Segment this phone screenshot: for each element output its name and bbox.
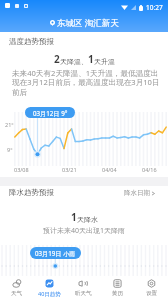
staticText: 03月12日 9° [33, 109, 68, 117]
staticText: 天气 [11, 290, 22, 297]
staticText: 天降温、 [60, 57, 88, 66]
other: 40日趋势 [45, 279, 54, 288]
button[interactable]: 东城区 淘汇新天 [0, 17, 168, 29]
staticText: 10:27 [146, 3, 163, 12]
other: 黄历 [113, 279, 122, 288]
button[interactable]: 听天气 [66, 276, 100, 300]
other: 设置 [147, 279, 156, 288]
staticText: 降水日期 [124, 189, 150, 197]
staticText: 东城区 淘汇新天 [57, 17, 119, 29]
staticText: 2 [54, 52, 60, 66]
staticText: 预计未来40天出现1天降雨 [0, 226, 168, 236]
button[interactable]: 温度趋势预报 [9, 37, 54, 46]
staticText: 04/04 [102, 166, 117, 173]
staticText: 9° [7, 146, 13, 153]
button[interactable]: 03月12日 9° [25, 107, 75, 118]
button[interactable]: 设置 [134, 276, 168, 300]
staticText: 03/21 [62, 166, 77, 173]
button[interactable]: 降水趋势预报 [9, 188, 54, 197]
button[interactable]: 黄历 [100, 276, 134, 300]
staticText: 设置 [146, 290, 157, 297]
staticText: 03月19日 小雨 [35, 249, 76, 257]
staticText: 21° [5, 121, 14, 128]
staticText: 04/16 [142, 166, 157, 173]
staticText: 03/08 [14, 166, 29, 173]
button[interactable]: 40日趋势 [33, 276, 66, 300]
staticText: 听天气 [75, 290, 92, 297]
staticText: 1 [88, 52, 94, 66]
button[interactable]: 天气 [0, 276, 33, 300]
other: 听天气 [78, 279, 88, 288]
button[interactable]: 03月19日 小雨 [30, 247, 81, 259]
button[interactable]: 降水日期 [124, 189, 155, 197]
staticText: 40日趋势 [38, 290, 61, 298]
staticText: 未来40天有2天降温、1天升温，最低温度出现在3月12日前后，最高温度出现在3月… [12, 68, 163, 97]
staticText: 黄历 [112, 290, 123, 297]
staticText: 天升温 [94, 57, 115, 66]
staticText: 1 [71, 210, 77, 224]
staticText: 天降水 [77, 215, 98, 224]
other: 天气 [12, 279, 22, 288]
